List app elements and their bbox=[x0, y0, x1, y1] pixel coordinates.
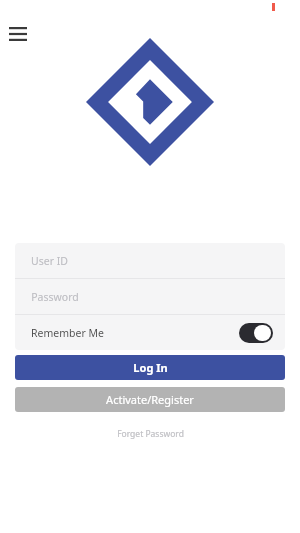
button[interactable]: Password bbox=[15, 279, 285, 314]
staticText: Forget Password bbox=[117, 428, 184, 440]
button[interactable]: Forget Password bbox=[0, 425, 300, 443]
button[interactable]: Log In bbox=[15, 355, 285, 380]
staticText: Log In bbox=[133, 360, 168, 375]
button[interactable]: User ID bbox=[15, 243, 285, 278]
staticText: Remember Me bbox=[31, 326, 104, 340]
button[interactable]: Remember Me bbox=[15, 315, 285, 350]
staticText: User ID bbox=[31, 254, 68, 268]
staticText: Password bbox=[31, 290, 79, 304]
button[interactable]: Activate/Register bbox=[15, 387, 285, 412]
button[interactable]: Menu bbox=[4, 20, 32, 48]
staticText: Activate/Register bbox=[106, 392, 194, 407]
other: Remember Me toggle bbox=[239, 323, 273, 343]
